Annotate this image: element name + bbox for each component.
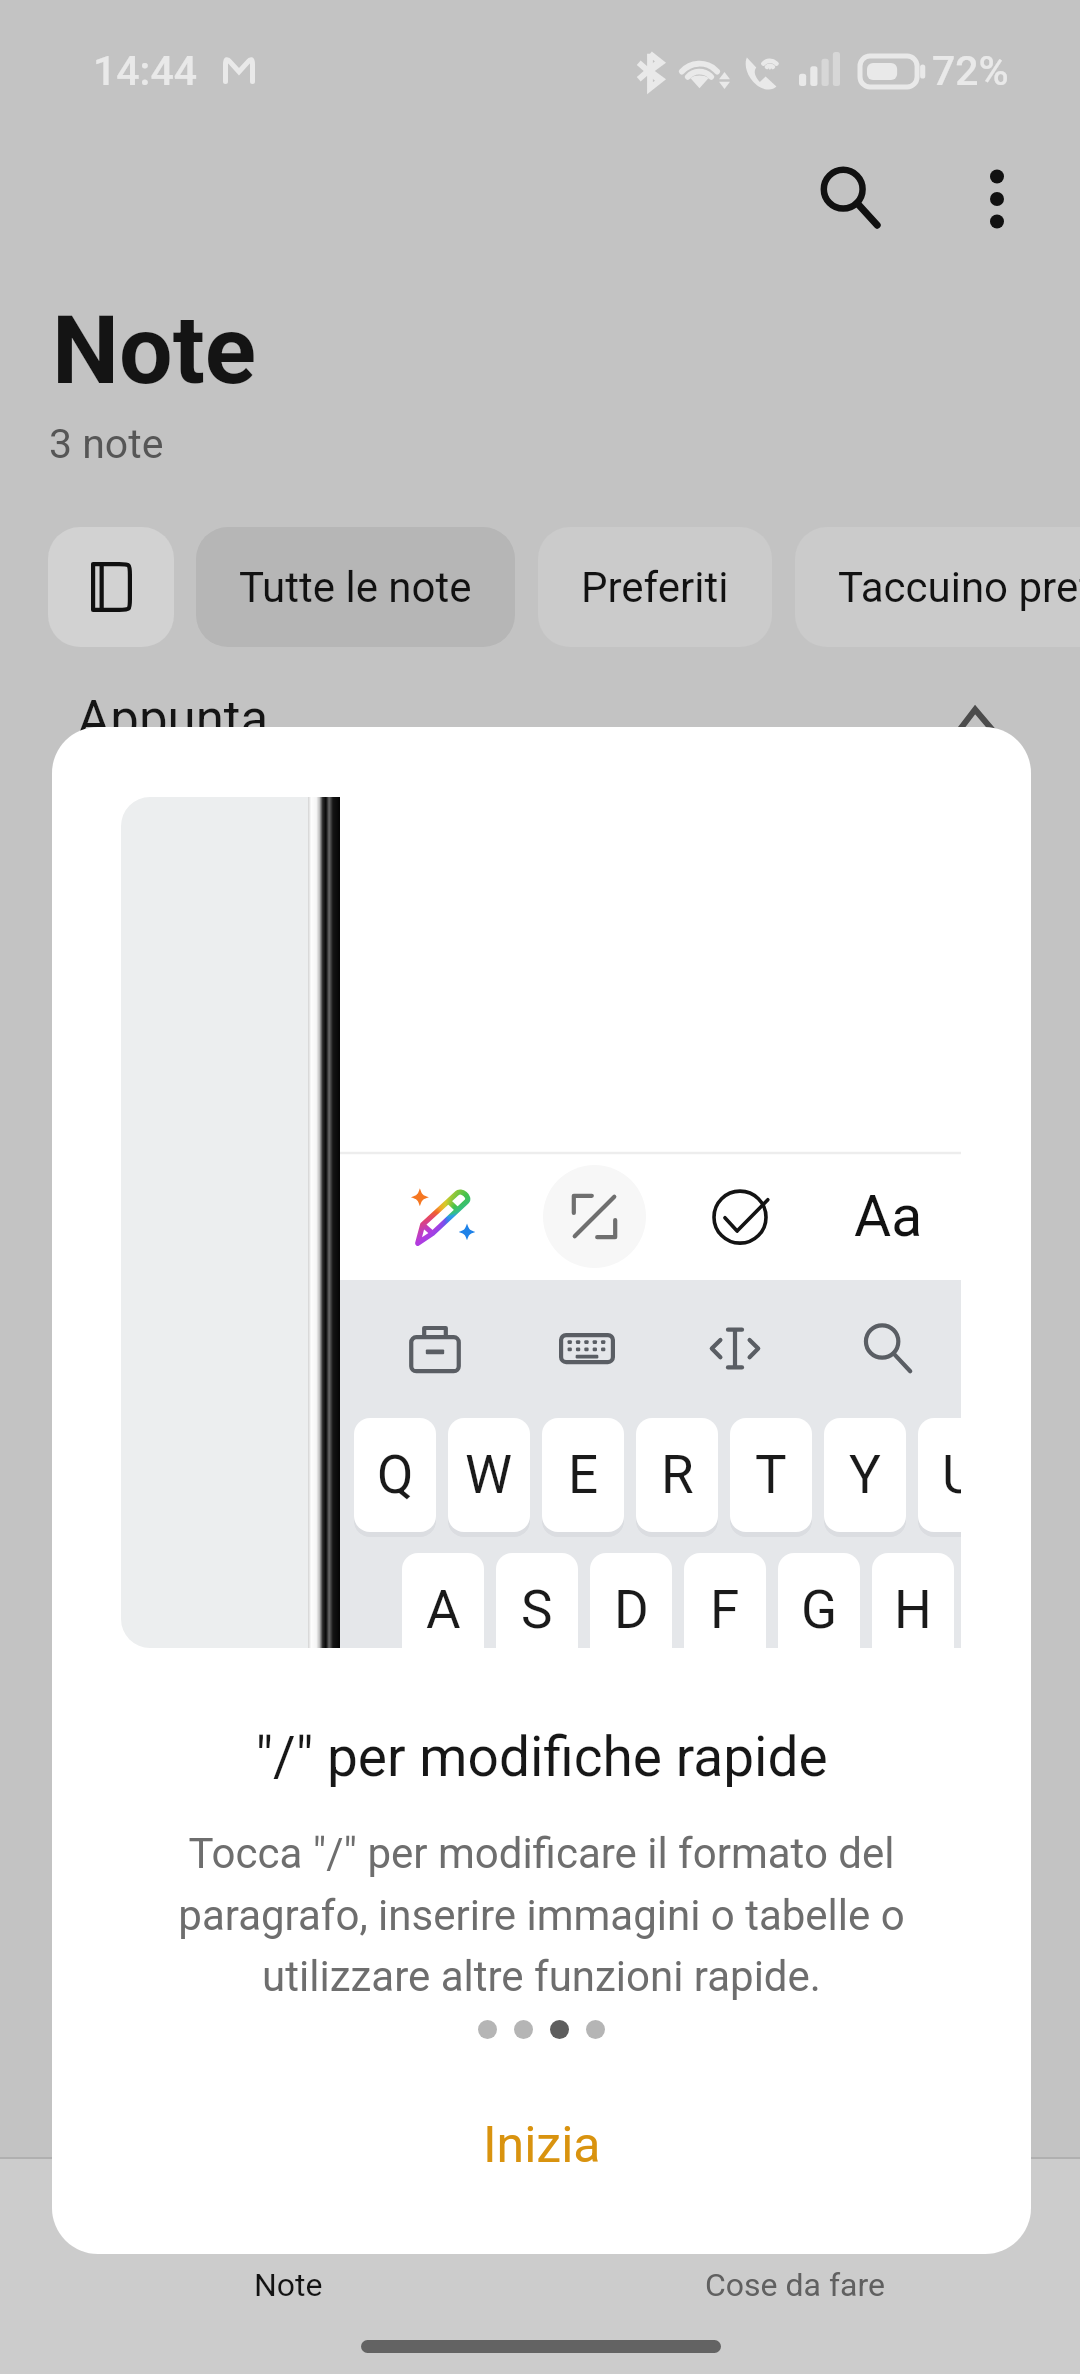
button[interactable]: Taccuino preferito [795,527,1080,647]
button[interactable]: Pagina ${i + 1} [478,2020,497,2039]
staticText: Q [377,1444,414,1506]
button[interactable]: Inizia [52,2079,1031,2211]
staticText: G [801,1579,838,1641]
staticText: 3 note [49,420,164,468]
staticText: Inizia [483,2116,601,2175]
staticText: "/" per modifiche rapide [52,1725,1031,1789]
staticText: H [894,1579,932,1641]
button[interactable]: Appunta [48,672,1032,764]
staticText: 14:44 [93,47,198,95]
staticText: A [426,1579,461,1641]
staticText: Note [254,2266,323,2304]
staticText: F [710,1579,740,1641]
button[interactable]: Preferiti [538,527,772,647]
button[interactable]: Pagina ${i + 1} [586,2020,605,2039]
staticText: Tocca "/" per modificare il formato del … [52,1829,1031,2001]
staticText: Cose da fare [705,2266,885,2304]
staticText: Y [849,1444,881,1506]
button[interactable]: Tutte le note [196,527,515,647]
staticText: D [614,1579,649,1641]
button[interactable]: Cerca [793,141,907,255]
staticText: Note [52,295,257,406]
staticText: Aa [854,1183,923,1250]
button[interactable]: Pagina ${i + 1} [550,2020,569,2039]
staticText: E [568,1444,599,1506]
staticText: T [755,1444,787,1506]
button[interactable]: Note [200,2243,376,2327]
staticText: W [465,1444,513,1506]
staticText: R [661,1444,694,1506]
staticText: Preferiti [581,563,729,612]
button[interactable]: Pagina ${i + 1} [514,2020,533,2039]
button[interactable]: Cose da fare [700,2243,890,2327]
staticText: Tutte le note [239,563,472,612]
button[interactable]: Blocchi note [48,527,174,647]
button[interactable]: Altre opzioni [940,142,1054,256]
staticText: U [942,1444,961,1506]
staticText: S [521,1579,553,1641]
staticText: Taccuino preferito [838,563,1080,612]
staticText: 72% [932,47,1009,95]
staticText: Appunta [77,690,269,750]
